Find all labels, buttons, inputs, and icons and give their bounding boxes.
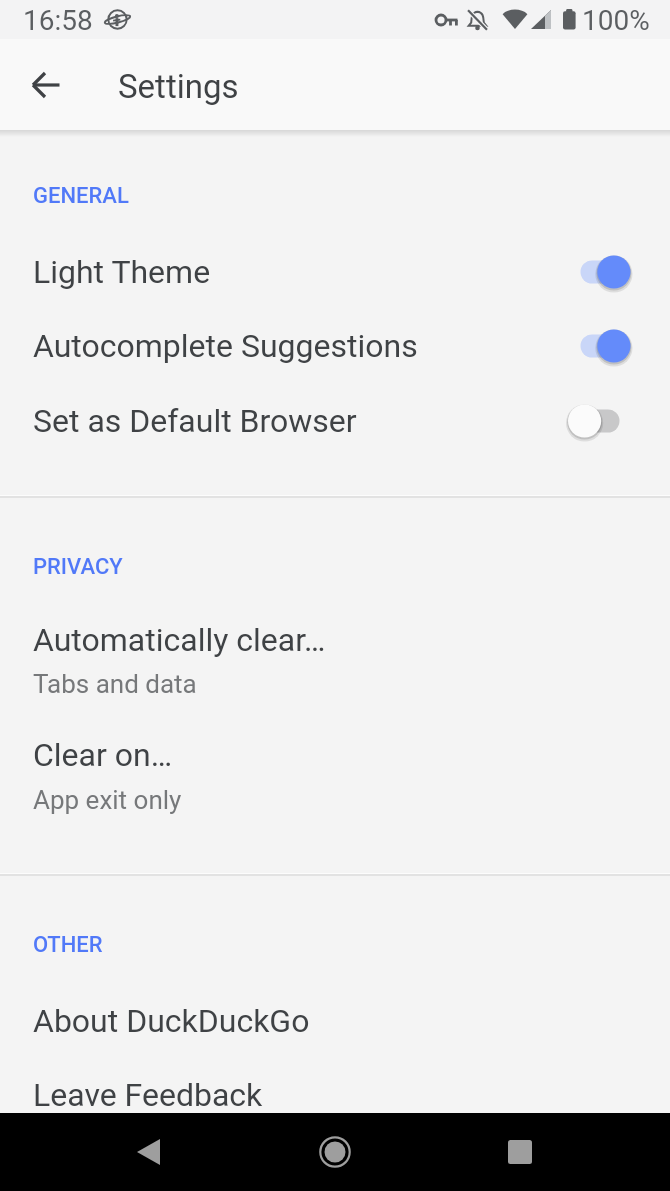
button[interactable]: Autocomplete Suggestions (0, 309, 670, 383)
staticText: Leave Feedback (33, 1076, 263, 1114)
button[interactable]: Leave Feedback (0, 1058, 670, 1132)
button[interactable]: Back (114, 1126, 182, 1178)
button[interactable]: Back (17, 56, 75, 114)
button[interactable]: Clear on… (0, 722, 670, 812)
button[interactable]: Home (301, 1126, 369, 1178)
staticText: Autocomplete Suggestions (33, 327, 418, 365)
button[interactable]: Light Theme (0, 235, 670, 309)
staticText: Light Theme (33, 253, 211, 291)
staticText: 16:58 (23, 4, 93, 37)
button[interactable]: Recent apps (486, 1126, 554, 1178)
staticText: GENERAL (33, 183, 129, 209)
staticText: Settings (118, 67, 239, 106)
staticText: Set as Default Browser (33, 402, 357, 440)
button[interactable]: About DuckDuckGo (0, 984, 670, 1058)
staticText: App exit only (33, 785, 182, 815)
staticText: Clear on… (33, 736, 173, 774)
staticText: Automatically clear… (33, 621, 326, 659)
staticText: PRIVACY (33, 554, 123, 580)
button[interactable]: Automatically clear… (0, 607, 670, 696)
staticText: Tabs and data (33, 669, 197, 699)
staticText: About DuckDuckGo (33, 1002, 310, 1040)
staticText: 100% (582, 4, 650, 37)
button[interactable]: Set as Default Browser (0, 384, 670, 458)
staticText: OTHER (33, 932, 103, 958)
